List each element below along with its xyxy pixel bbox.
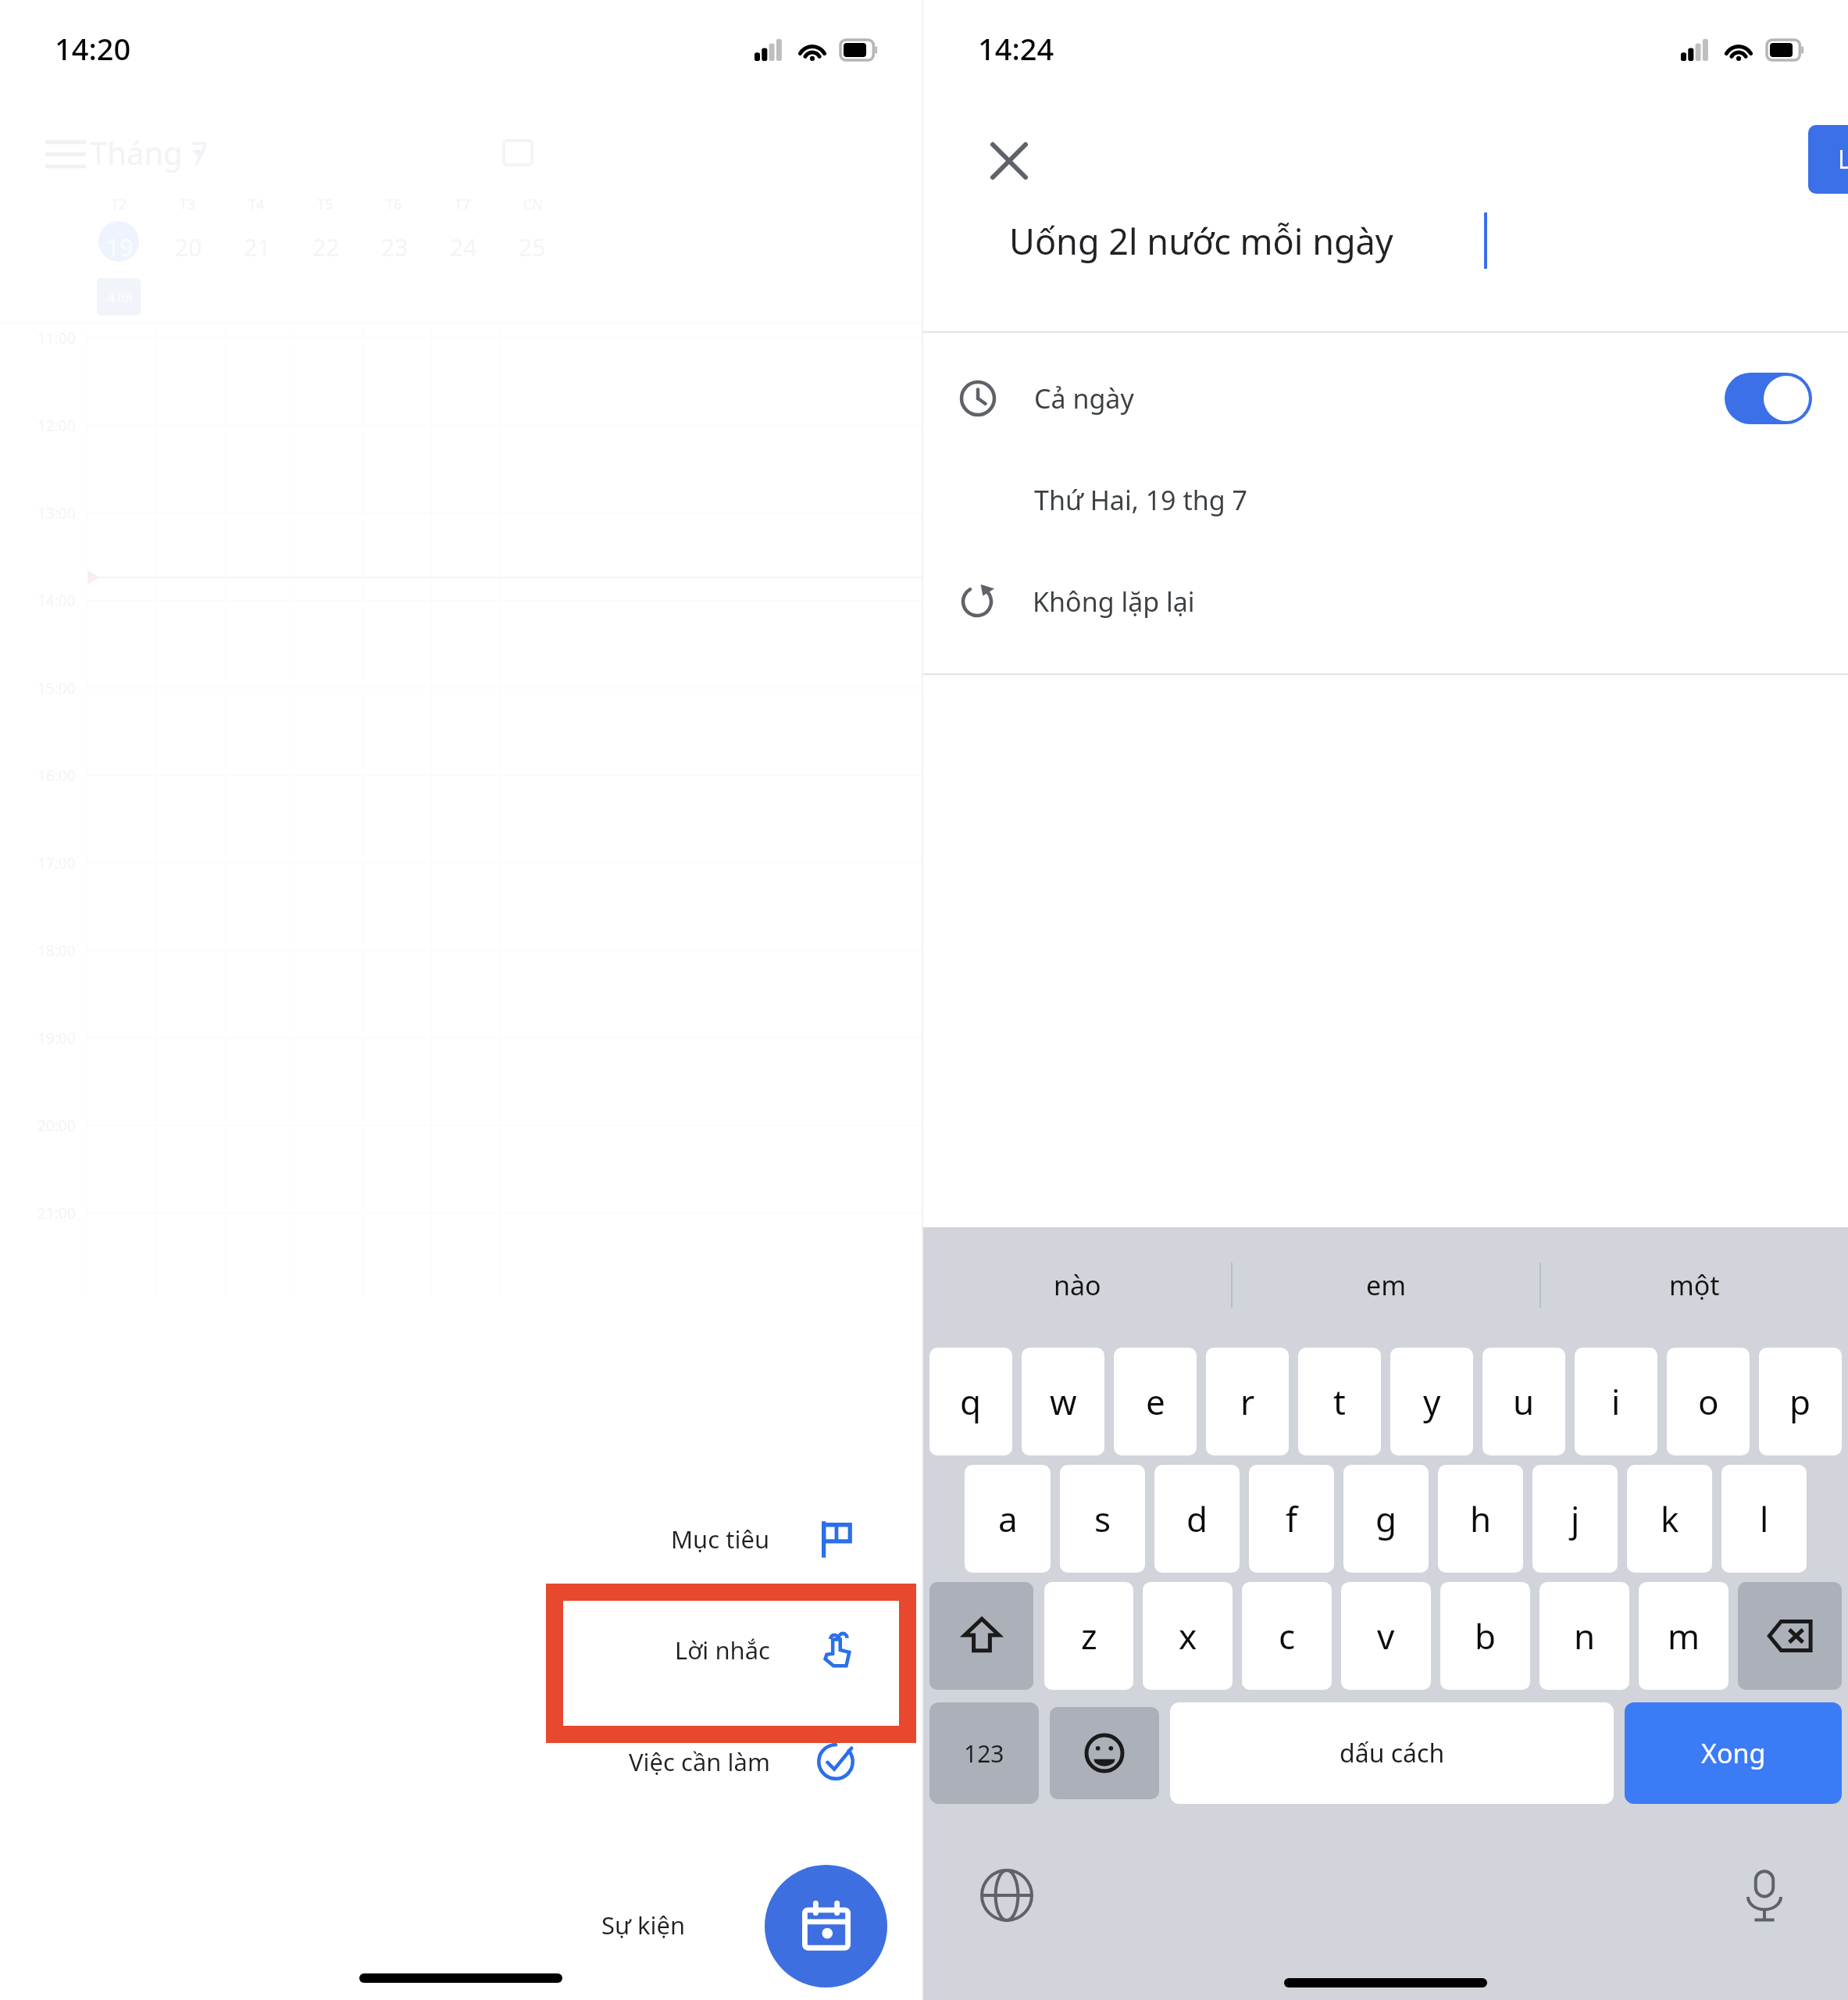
staticText: h	[1470, 1495, 1492, 1542]
staticText: 123	[964, 1737, 1004, 1770]
button[interactable]: f	[1249, 1465, 1334, 1573]
staticText: i	[1611, 1378, 1621, 1425]
button[interactable]: m	[1639, 1582, 1728, 1690]
button[interactable]: o	[1667, 1348, 1750, 1455]
staticText: r	[1240, 1378, 1255, 1425]
button[interactable]: h	[1438, 1465, 1523, 1573]
button[interactable]: nào	[923, 1227, 1231, 1343]
button[interactable]: y	[1390, 1348, 1473, 1455]
staticText: o	[1698, 1378, 1719, 1425]
staticText: T7	[455, 195, 471, 214]
staticText: Tháng 7	[90, 131, 209, 173]
button[interactable]: g	[1343, 1465, 1429, 1573]
button[interactable]: Không lặp lại	[923, 547, 1848, 656]
staticText: 20	[175, 231, 202, 263]
staticText: Lưu	[1838, 142, 1848, 177]
staticText: m	[1668, 1612, 1700, 1659]
button[interactable]: Cả ngày	[923, 344, 1848, 453]
button[interactable]: Nhập bằng giọng nói	[1737, 1868, 1792, 1923]
button[interactable]: r	[1206, 1348, 1289, 1455]
staticText: y	[1423, 1378, 1441, 1425]
button[interactable]: z	[1044, 1582, 1133, 1690]
staticText: b	[1475, 1612, 1497, 1659]
button[interactable]: 123	[929, 1702, 1039, 1804]
staticText: 19:00	[37, 1028, 76, 1048]
button[interactable]: k	[1627, 1465, 1712, 1573]
staticText: f	[1286, 1495, 1298, 1542]
staticText: một	[1669, 1267, 1720, 1303]
staticText: k	[1661, 1495, 1679, 1542]
button[interactable]: w	[1022, 1348, 1104, 1455]
staticText: n	[1574, 1612, 1596, 1659]
button[interactable]: Thứ Hai, 19 thg 7	[923, 453, 1848, 547]
staticText: T2	[111, 195, 127, 214]
staticText: 21	[244, 231, 271, 263]
staticText: 14:24	[978, 28, 1054, 69]
button[interactable]: Đóng	[979, 131, 1039, 191]
button[interactable]: b	[1440, 1582, 1530, 1690]
staticText: c	[1279, 1612, 1296, 1659]
staticText: T5	[317, 195, 334, 214]
staticText: 24	[450, 231, 477, 263]
staticText: Sự kiện	[601, 1909, 686, 1941]
staticText: v	[1377, 1612, 1395, 1659]
button[interactable]: i	[1575, 1348, 1657, 1455]
button[interactable]: Đổi bàn phím	[979, 1868, 1034, 1923]
button[interactable]: l	[1721, 1465, 1807, 1573]
staticText: 12:00	[37, 416, 76, 436]
button[interactable]: p	[1759, 1348, 1842, 1455]
button[interactable]: em	[1233, 1227, 1539, 1343]
button[interactable]: d	[1154, 1465, 1240, 1573]
staticText: x	[1179, 1612, 1197, 1659]
button[interactable]: c	[1242, 1582, 1332, 1690]
button[interactable]: Shift	[929, 1582, 1033, 1690]
staticText: 17:00	[37, 853, 76, 873]
button[interactable]: v	[1341, 1582, 1431, 1690]
button[interactable]: Lưu	[1808, 125, 1848, 194]
button[interactable]: t	[1298, 1348, 1381, 1455]
button[interactable]: một	[1541, 1227, 1848, 1343]
button[interactable]: u	[1482, 1348, 1565, 1455]
staticText: q	[960, 1378, 982, 1425]
button[interactable]: a	[965, 1465, 1051, 1573]
button[interactable]: s	[1060, 1465, 1145, 1573]
staticText: 15:00	[37, 678, 76, 698]
staticText: 23	[381, 231, 408, 263]
staticText: 11:00	[37, 328, 76, 348]
staticText: j	[1571, 1495, 1580, 1542]
button[interactable]: n	[1539, 1582, 1629, 1690]
button[interactable]: Việc cần làm	[336, 1707, 875, 1816]
button[interactable]: Mục tiêu	[336, 1484, 875, 1594]
staticText: p	[1789, 1378, 1811, 1425]
button[interactable]: Biểu tượng cảm xúc	[1050, 1707, 1159, 1799]
button[interactable]: x	[1143, 1582, 1233, 1690]
staticText: Thứ Hai, 19 thg 7	[1034, 482, 1247, 518]
staticText: T3	[180, 195, 196, 214]
staticText: 14:00	[37, 591, 76, 611]
button[interactable]: Xong	[1625, 1702, 1842, 1804]
button[interactable]: e	[1114, 1348, 1197, 1455]
staticText: u	[1513, 1378, 1535, 1425]
staticText: 4 lời	[108, 289, 133, 306]
staticText: Việc cần làm	[629, 1745, 770, 1778]
staticText: t	[1333, 1378, 1346, 1425]
button[interactable]: q	[929, 1348, 1012, 1455]
staticText: Uống 2l nước mỗi ngày	[1009, 217, 1393, 265]
staticText: dấu cách	[1340, 1736, 1445, 1770]
button[interactable]: Thêm sự kiện	[765, 1865, 887, 1987]
staticText: a	[998, 1495, 1018, 1542]
staticText: 25	[519, 231, 546, 263]
staticText: CN	[523, 195, 544, 214]
staticText: 16:00	[37, 766, 76, 786]
button[interactable]: Xoá	[1738, 1582, 1842, 1690]
button[interactable]: Lời nhắc	[336, 1595, 875, 1705]
button[interactable]: dấu cách	[1170, 1702, 1614, 1804]
staticText: 19	[106, 231, 134, 263]
staticText: 14:20	[55, 28, 131, 69]
staticText: Lời nhắc	[675, 1634, 770, 1666]
staticText: z	[1081, 1612, 1097, 1659]
staticText: g	[1375, 1495, 1397, 1542]
button[interactable]: j	[1532, 1465, 1618, 1573]
staticText: 20:00	[37, 1116, 76, 1136]
staticText: T4	[248, 195, 265, 214]
